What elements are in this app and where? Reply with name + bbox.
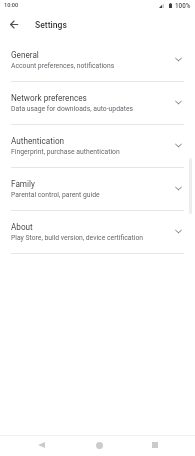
button[interactable]: Authentication — [0, 124, 195, 167]
button[interactable]: Network preferences — [0, 81, 195, 124]
staticText: Fingerprint, purchase authentication — [11, 148, 120, 156]
button[interactable]: General — [0, 38, 195, 81]
staticText: 10:00 — [4, 2, 19, 9]
button[interactable]: About — [0, 210, 195, 253]
button[interactable]: Back — [4, 14, 24, 34]
staticText: Parental control, parent guide — [11, 191, 100, 199]
staticText: Account preferences, notifications — [11, 62, 115, 70]
staticText: Settings — [35, 20, 67, 30]
staticText: Family — [11, 179, 35, 189]
staticText: 100% — [175, 2, 191, 9]
button[interactable]: Recents — [145, 435, 165, 455]
staticText: Network preferences — [11, 93, 87, 103]
staticText: General — [11, 50, 39, 60]
staticText: Authentication — [11, 136, 65, 146]
button[interactable]: Family — [0, 167, 195, 210]
button[interactable]: Back — [31, 435, 51, 455]
staticText: About — [11, 222, 33, 232]
staticText: Play Store, build version, device certif… — [11, 234, 144, 242]
button[interactable]: Home — [89, 435, 109, 455]
staticText: Data usage for downloads, auto-updates — [11, 105, 133, 113]
